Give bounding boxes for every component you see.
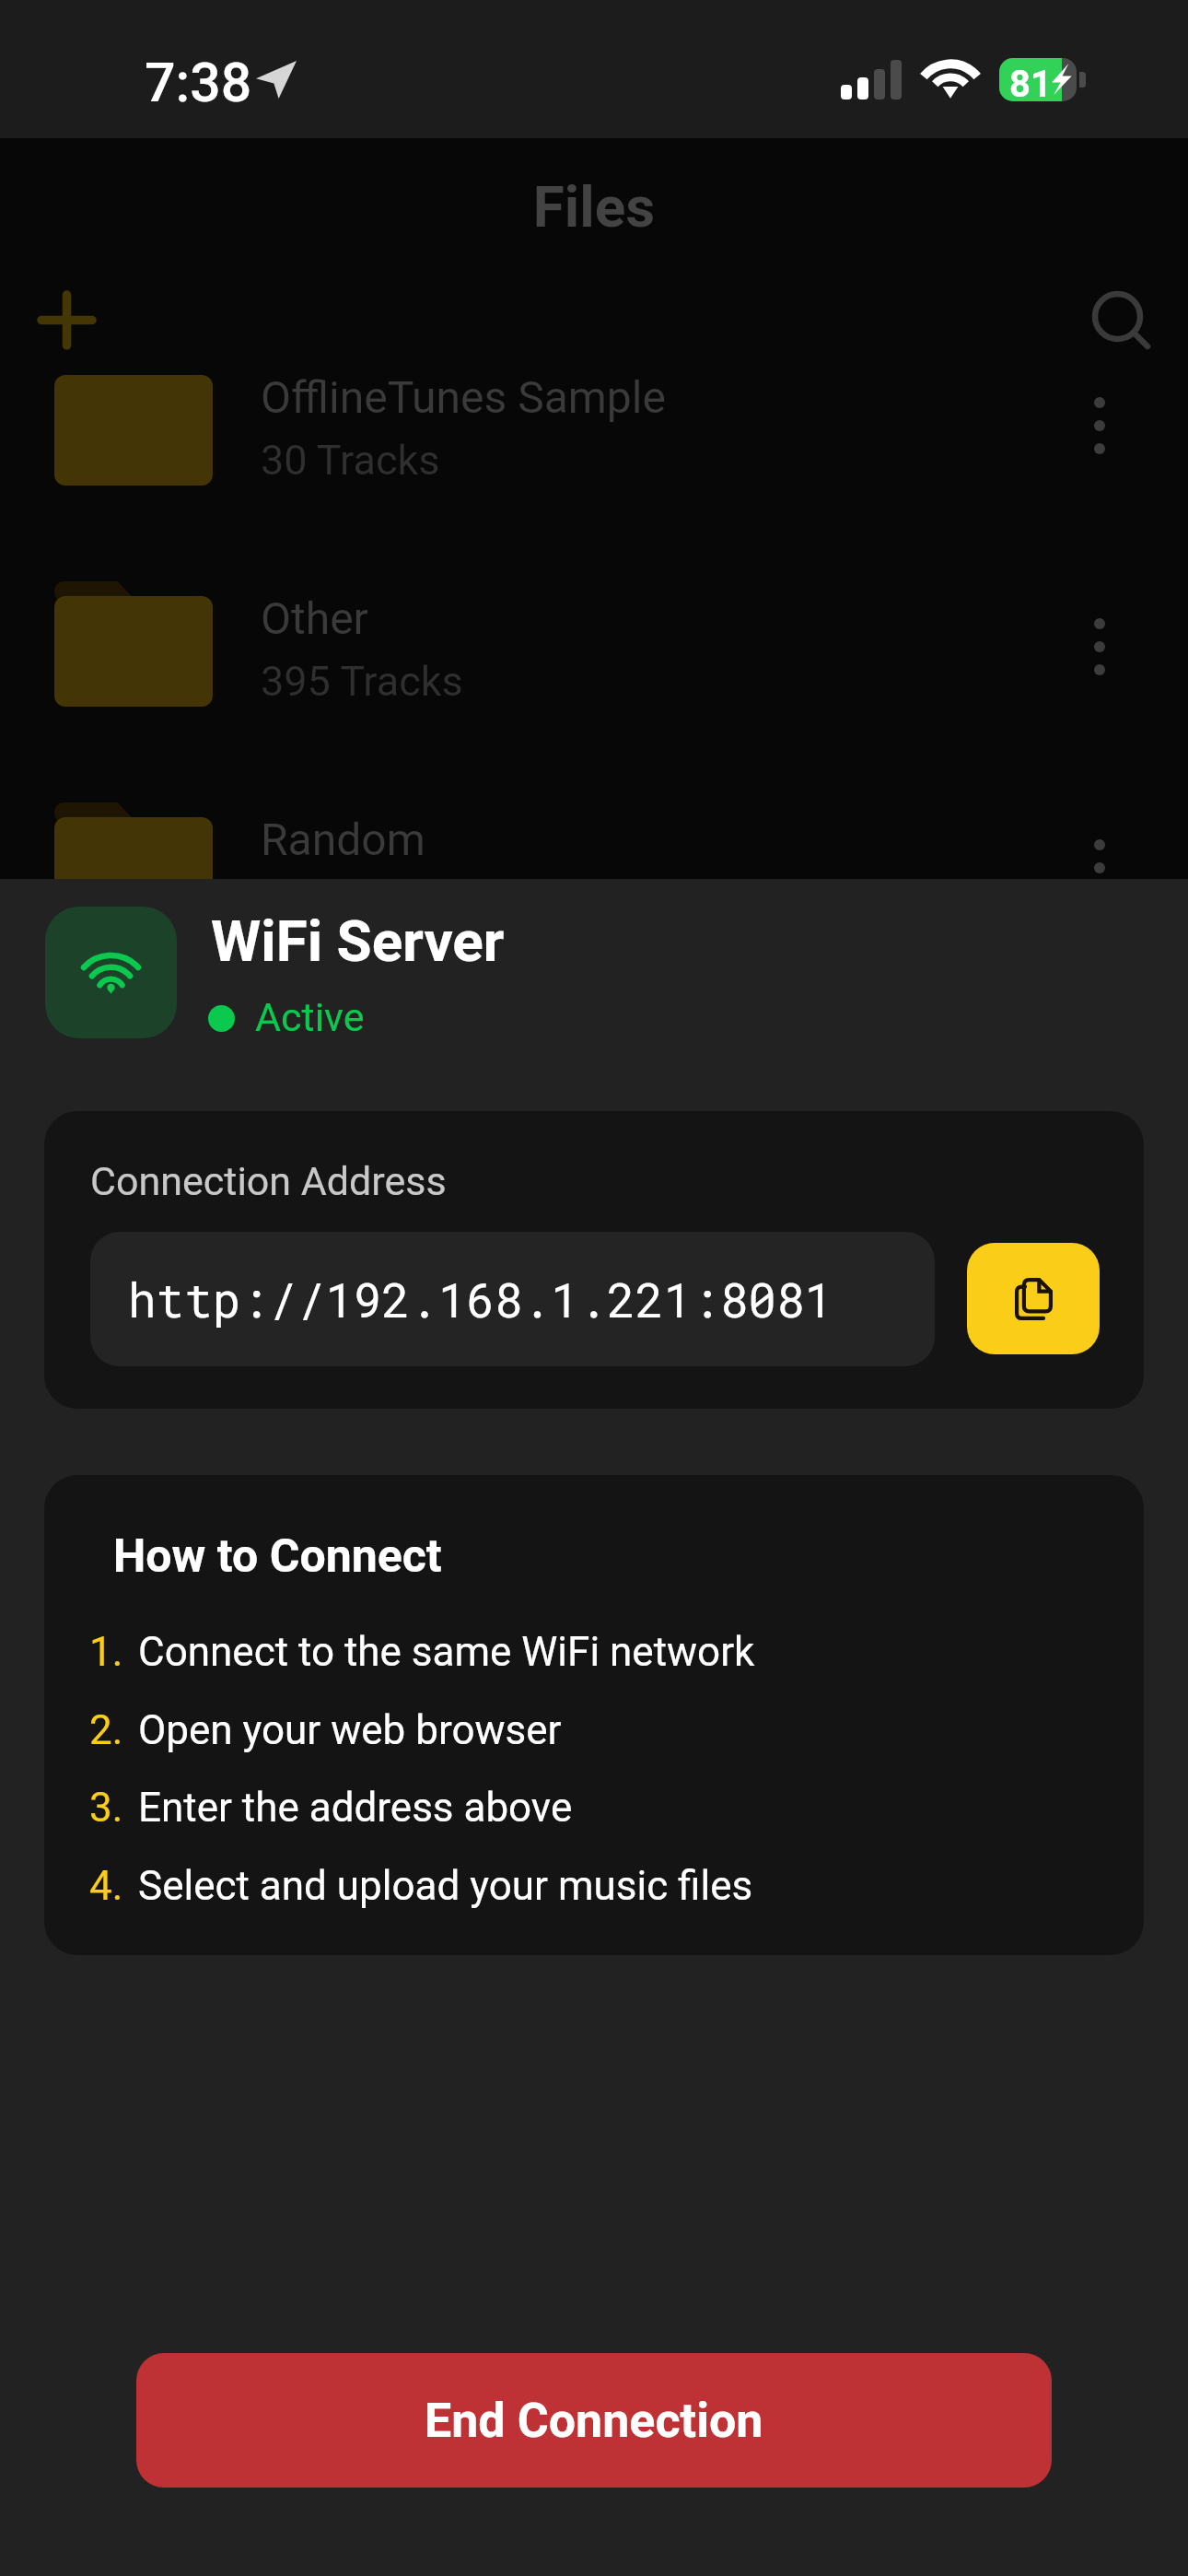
staticText: 7:38	[145, 51, 252, 114]
staticText: 2.	[89, 1706, 123, 1754]
staticText: 395 Tracks	[261, 657, 463, 706]
button[interactable]: More options	[1094, 839, 1105, 896]
staticText: Random	[261, 814, 425, 865]
button[interactable]	[45, 346, 1058, 521]
staticText: 30 Tracks	[261, 436, 440, 485]
staticText: 4.	[89, 1862, 123, 1910]
staticText: How to Connect	[113, 1529, 442, 1584]
button[interactable]: End Connection	[136, 2353, 1052, 2488]
staticText: 3.	[89, 1784, 123, 1832]
staticText: Connection Address	[90, 1158, 447, 1204]
button[interactable]	[45, 789, 1058, 964]
button[interactable]: http://192.168.1.221:8081	[90, 1232, 935, 1366]
staticText: Active	[255, 994, 365, 1040]
staticText: Other	[261, 592, 368, 644]
staticText: Connect to the same WiFi network	[138, 1628, 755, 1676]
staticText: Open your web browser	[138, 1706, 562, 1754]
staticText: Files	[0, 173, 1188, 240]
staticText: http://192.168.1.221:8081	[128, 1269, 833, 1330]
button[interactable]	[45, 568, 1058, 743]
staticText: 1.	[89, 1628, 123, 1676]
button[interactable]: Copy address	[967, 1243, 1100, 1354]
staticText: 81	[1009, 63, 1052, 106]
button[interactable]: More options	[1094, 618, 1105, 675]
staticText: Enter the address above	[138, 1784, 573, 1832]
staticText: End Connection	[425, 2393, 763, 2449]
staticText: WiFi Server	[211, 907, 505, 975]
staticText: Select and upload your music files	[138, 1862, 753, 1910]
button[interactable]: Add folder	[41, 295, 92, 345]
button[interactable]: More options	[1094, 397, 1105, 454]
staticText: OfflineTunes Sample	[261, 371, 666, 423]
button[interactable]: Search	[1092, 291, 1149, 348]
